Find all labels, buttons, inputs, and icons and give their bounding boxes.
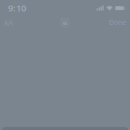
staticText: ᴀA xyxy=(4,17,13,28)
staticText: 9:10 xyxy=(8,2,26,14)
button[interactable]: Page settings xyxy=(60,18,69,27)
staticText: Done xyxy=(109,18,126,27)
button[interactable]: Done xyxy=(106,17,126,27)
